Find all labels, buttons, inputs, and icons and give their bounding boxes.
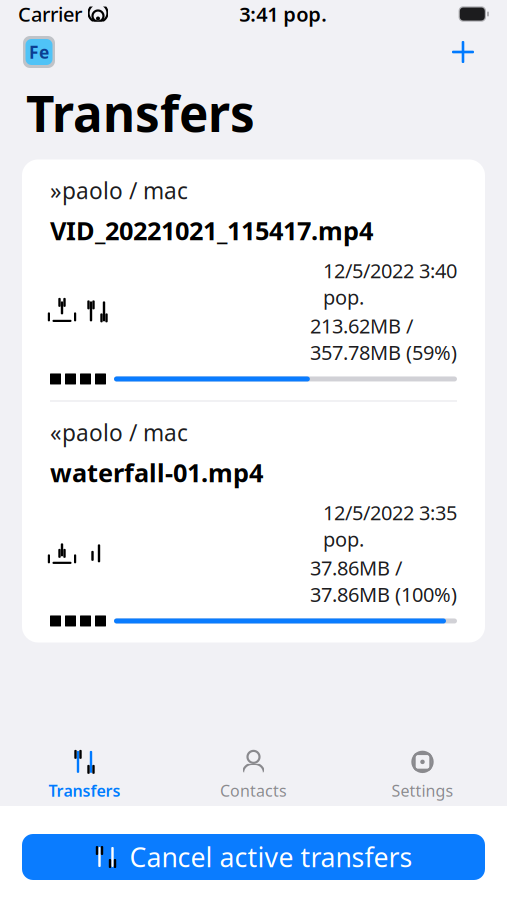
staticText: 12/5/2022 3:35 pop.: [323, 499, 457, 552]
staticText: Transfers: [48, 780, 120, 801]
staticText: 213.62MB / 357.78MB (59%): [310, 312, 457, 365]
staticText: Transfers: [26, 80, 255, 145]
staticText: 3:41 pop.: [239, 1, 327, 27]
staticText: Contacts: [220, 780, 287, 801]
staticText: Cancel active transfers: [129, 839, 412, 875]
staticText: «paolo / mac: [50, 417, 188, 448]
button[interactable]: App: [22, 35, 56, 69]
staticText: VID_20221021_115417.mp4: [50, 214, 373, 247]
button[interactable]: Contacts: [169, 743, 338, 807]
button[interactable]: »paolo / mac: [22, 159, 485, 400]
staticText: 37.86MB / 37.86MB (100%): [310, 554, 457, 607]
button[interactable]: Transfers: [0, 743, 169, 807]
button[interactable]: «paolo / mac: [22, 401, 485, 642]
staticText: Settings: [391, 780, 453, 801]
staticText: 12/5/2022 3:40 pop.: [323, 257, 457, 310]
staticText: Carrier: [18, 1, 82, 27]
button[interactable]: Settings: [338, 743, 507, 807]
staticText: waterfall-01.mp4: [50, 456, 263, 489]
staticText: »paolo / mac: [50, 175, 188, 206]
button[interactable]: Add transfer: [441, 32, 485, 72]
button[interactable]: Cancel active transfers: [22, 834, 485, 880]
staticText: Fe: [29, 40, 49, 63]
